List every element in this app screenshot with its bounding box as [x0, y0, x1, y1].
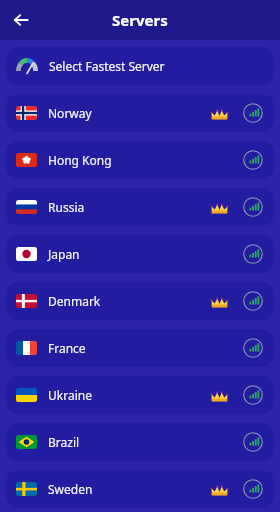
button[interactable]: Sweden: [6, 470, 274, 508]
other: Signal strength: [242, 384, 264, 406]
other: Signal strength: [242, 478, 264, 500]
button[interactable]: Ukraine: [6, 376, 274, 414]
button[interactable]: Select Fastest Server: [6, 47, 274, 85]
button[interactable]: Japan: [6, 235, 274, 273]
staticText: France: [48, 340, 86, 356]
other: Signal strength: [242, 102, 264, 124]
other: Signal strength: [242, 243, 264, 265]
other: Signal strength: [242, 290, 264, 312]
staticText: Select Fastest Server: [49, 58, 165, 74]
staticText: Brazil: [48, 434, 80, 450]
staticText: Russia: [48, 199, 85, 215]
staticText: Ukraine: [48, 387, 92, 403]
button[interactable]: Back: [6, 5, 36, 35]
button[interactable]: France: [6, 329, 274, 367]
button[interactable]: Brazil: [6, 423, 274, 461]
button[interactable]: Denmark: [6, 282, 274, 320]
staticText: Hong Kong: [48, 152, 112, 168]
other: Signal strength: [242, 431, 264, 453]
button[interactable]: Norway: [6, 94, 274, 132]
staticText: Servers: [112, 10, 168, 30]
staticText: Sweden: [48, 481, 93, 497]
staticText: Japan: [48, 246, 80, 262]
button[interactable]: Hong Kong: [6, 141, 274, 179]
staticText: Denmark: [48, 293, 101, 309]
staticText: Norway: [48, 105, 92, 121]
other: Signal strength: [242, 149, 264, 171]
button[interactable]: Russia: [6, 188, 274, 226]
other: Signal strength: [242, 196, 264, 218]
other: Signal strength: [242, 337, 264, 359]
